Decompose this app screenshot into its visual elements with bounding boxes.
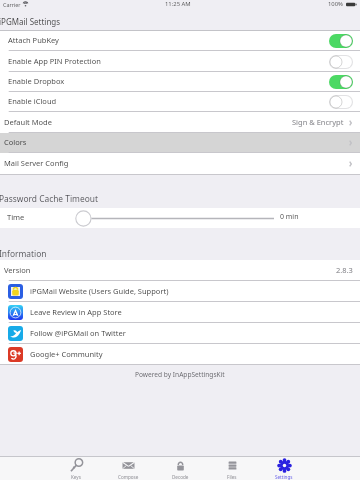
staticText: Mail Server Config [4, 158, 69, 168]
staticText: Compose [118, 474, 139, 480]
button[interactable]: Keys [50, 457, 102, 480]
button[interactable]: Enable Dropbox [0, 72, 360, 92]
staticText: Time [7, 212, 25, 222]
staticText: iPGMail Website (Users Guide, Support) [30, 286, 169, 296]
staticText: Enable iCloud [8, 96, 57, 106]
staticText: Colors [4, 137, 27, 147]
staticText: Enable App PIN Protection [8, 56, 101, 66]
button[interactable]: Colors [0, 133, 360, 153]
staticText: Default Mode [4, 117, 52, 127]
staticText: Carrier [3, 1, 21, 8]
button[interactable]: Google+ Community [0, 344, 360, 365]
button[interactable]: Time slider [75, 210, 274, 227]
button[interactable]: Leave Review in App Store [0, 302, 360, 323]
button[interactable]: Version [0, 260, 360, 281]
staticText: Information [0, 248, 47, 259]
staticText: Follow @iPGMail on Twitter [30, 328, 126, 338]
button[interactable]: Default Mode [0, 112, 360, 133]
staticText: Settings [275, 474, 293, 480]
button[interactable]: iPGMail Website (Users Guide, Support) [0, 281, 360, 302]
staticText: Version [4, 265, 31, 275]
staticText: Enable Dropbox [8, 76, 65, 86]
staticText: Sign & Encrypt [292, 117, 344, 127]
button[interactable]: Files [206, 457, 258, 480]
staticText: Google+ Community [30, 349, 103, 359]
button[interactable]: Attach PubKey [0, 31, 360, 51]
staticText: Attach PubKey [8, 35, 59, 45]
staticText: Files [227, 474, 237, 480]
staticText: 100% [328, 0, 344, 8]
staticText: Keys [71, 474, 81, 480]
button[interactable]: Enable App PIN Protection [0, 51, 360, 72]
button[interactable]: Settings [258, 457, 310, 480]
button[interactable]: Compose [102, 457, 154, 480]
staticText: 11:25 AM [165, 0, 191, 8]
staticText: Decode [172, 474, 189, 480]
other: Switch off [329, 55, 353, 69]
staticText: Password Cache Timeout [0, 193, 98, 204]
staticText: 2.8.3 [336, 265, 353, 275]
other: Switch on [329, 75, 353, 89]
staticText: Leave Review in App Store [30, 307, 122, 317]
staticText: 0 min [280, 212, 299, 222]
button[interactable]: Enable iCloud [0, 92, 360, 112]
staticText: iPGMail Settings [0, 16, 61, 27]
button[interactable]: Mail Server Config [0, 153, 360, 175]
other: Switch off [329, 95, 353, 109]
button[interactable]: Decode [154, 457, 206, 480]
button[interactable]: Follow @iPGMail on Twitter [0, 323, 360, 344]
staticText: Powered by InAppSettingsKit [135, 370, 225, 379]
other: Switch on [329, 34, 353, 48]
